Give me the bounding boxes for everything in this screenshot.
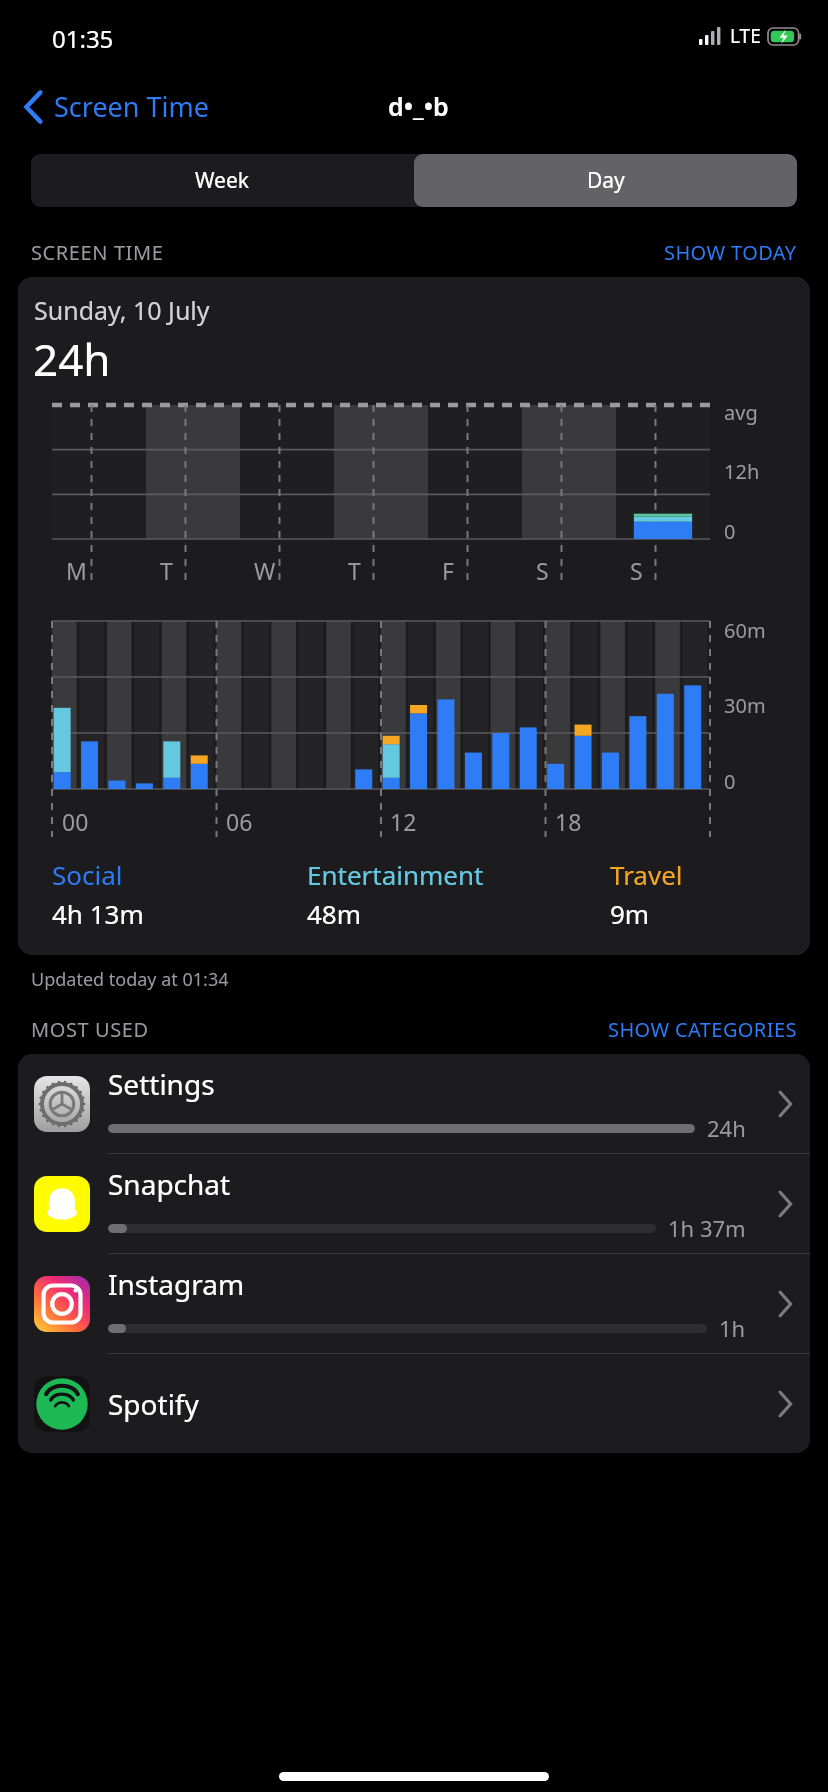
staticText: Sunday, 10 July <box>34 293 210 327</box>
staticText: 48m <box>307 896 362 931</box>
staticText: SCREEN TIME <box>31 239 164 266</box>
staticText: Spotify <box>108 1385 199 1423</box>
staticText: 18 <box>555 806 582 837</box>
staticText: Snapchat <box>108 1165 231 1203</box>
staticText: Entertainment <box>307 857 484 892</box>
staticText: avg <box>724 399 758 426</box>
button[interactable]: Settings <box>18 1054 810 1153</box>
staticText: F <box>442 555 454 586</box>
staticText: 30m <box>724 692 766 719</box>
staticText: 24h <box>33 329 111 389</box>
button[interactable]: Day <box>414 154 797 207</box>
staticText: Day <box>587 166 625 195</box>
staticText: 9m <box>610 896 650 931</box>
staticText: MOST USED <box>31 1016 149 1043</box>
staticText: W <box>254 555 276 586</box>
staticText: SHOW CATEGORIES <box>608 1016 797 1043</box>
staticText: S <box>630 555 643 586</box>
staticText: 12h <box>724 458 760 485</box>
staticText: 4h 13m <box>52 896 144 931</box>
staticText: 06 <box>226 806 253 837</box>
button[interactable]: SHOW CATEGORIES <box>608 1016 797 1043</box>
staticText: S <box>536 555 549 586</box>
staticText: 12 <box>390 806 417 837</box>
staticText: 0 <box>724 768 736 795</box>
staticText: 0 <box>724 518 736 545</box>
button[interactable]: Sunday, 10 July <box>18 277 810 955</box>
staticText: 1h 37m <box>668 1213 746 1243</box>
staticText: 60m <box>724 617 766 644</box>
other: Open Settings details <box>760 1054 810 1153</box>
staticText: 1h <box>719 1313 746 1343</box>
staticText: 24h <box>707 1113 746 1143</box>
button[interactable]: Week <box>31 154 414 207</box>
staticText: Settings <box>108 1065 215 1103</box>
staticText: T <box>348 555 361 586</box>
other: Open Spotify details <box>760 1354 810 1453</box>
staticText: Week <box>195 166 250 195</box>
staticText: M <box>66 555 87 586</box>
staticText: Social <box>52 857 123 892</box>
other: Open Snapchat details <box>760 1154 810 1253</box>
button[interactable]: Screen Time <box>18 84 216 129</box>
button[interactable]: SHOW TODAY <box>664 239 797 266</box>
staticText: Instagram <box>108 1265 245 1303</box>
staticText: Travel <box>610 857 683 892</box>
button[interactable]: Instagram <box>18 1254 810 1353</box>
staticText: d•_•b <box>388 89 449 123</box>
staticText: 01:35 <box>52 22 114 55</box>
staticText: Screen Time <box>54 88 210 125</box>
staticText: SHOW TODAY <box>664 239 797 266</box>
staticText: 00 <box>62 806 89 837</box>
staticText: LTE <box>730 23 761 49</box>
staticText: T <box>160 555 173 586</box>
other: Open Instagram details <box>760 1254 810 1353</box>
staticText: Updated today at 01:34 <box>31 967 229 992</box>
button[interactable]: Spotify <box>18 1354 810 1453</box>
button[interactable]: Snapchat <box>18 1154 810 1253</box>
